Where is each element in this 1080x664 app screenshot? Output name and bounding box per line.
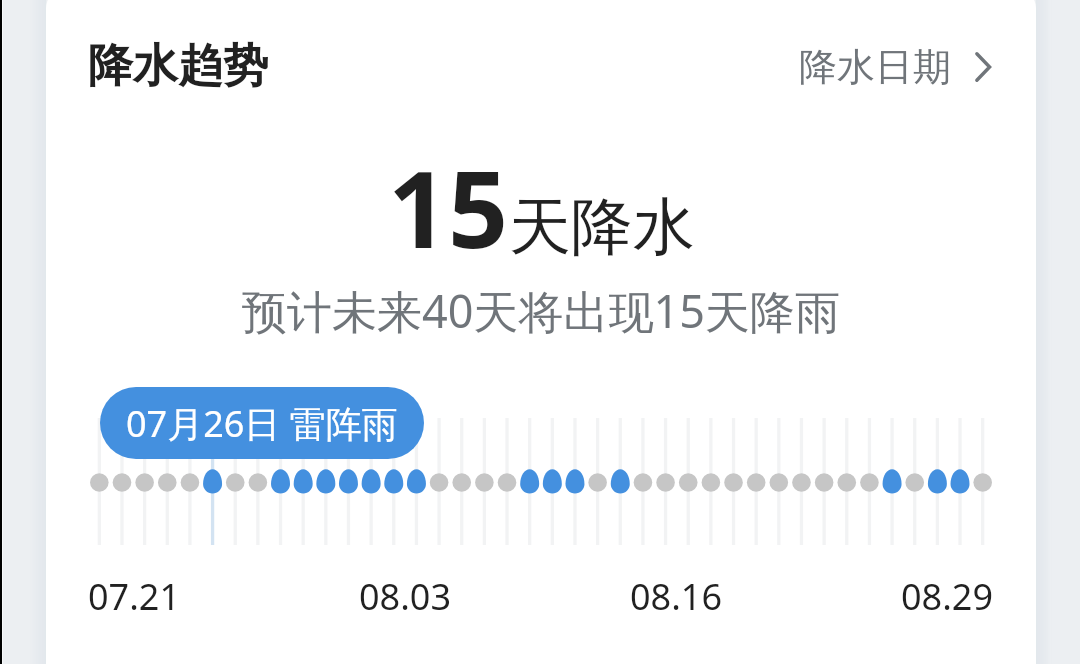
button[interactable]: 降水日期 bbox=[799, 43, 994, 91]
staticText: 07月26日 雷阵雨 bbox=[126, 399, 398, 448]
other: Open precipitation dates bbox=[972, 52, 994, 82]
staticText: 08.16 bbox=[630, 572, 723, 621]
staticText: 08.29 bbox=[901, 572, 994, 621]
staticText: 降水趋势 bbox=[88, 38, 268, 95]
staticText: 07.21 bbox=[88, 572, 181, 621]
staticText: 降水日期 bbox=[799, 43, 951, 91]
button[interactable]: 07月26日 雷阵雨 bbox=[100, 387, 424, 459]
staticText: 15 bbox=[388, 136, 509, 279]
staticText: 天降水 bbox=[509, 188, 695, 266]
staticText: 预计未来40天将出现15天降雨 bbox=[46, 280, 1036, 341]
staticText: 08.03 bbox=[359, 572, 452, 621]
